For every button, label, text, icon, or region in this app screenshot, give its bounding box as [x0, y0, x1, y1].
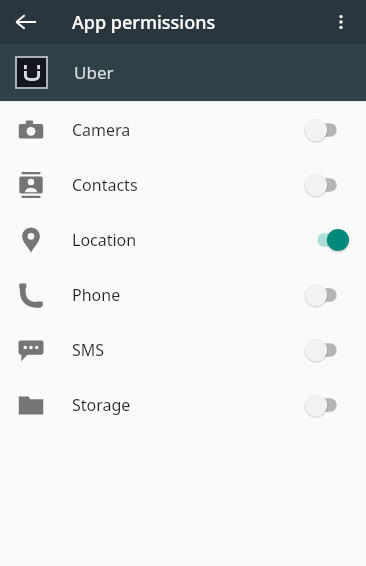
- button[interactable]: Location: [0, 212, 366, 267]
- button[interactable]: Uber: [0, 44, 366, 101]
- button[interactable]: Phone: [0, 267, 366, 322]
- staticText: App permissions: [72, 10, 216, 35]
- staticText: Uber: [74, 61, 114, 84]
- button[interactable]: Back: [6, 2, 46, 42]
- staticText: Storage: [72, 394, 305, 416]
- staticText: SMS: [72, 339, 305, 361]
- staticText: Phone: [72, 284, 305, 306]
- staticText: Camera: [72, 119, 305, 141]
- button[interactable]: Contacts: [0, 157, 366, 212]
- staticText: Contacts: [72, 174, 305, 196]
- button[interactable]: Storage: [0, 377, 366, 432]
- staticText: Location: [72, 229, 305, 251]
- button[interactable]: Camera: [0, 102, 366, 157]
- button[interactable]: More options: [321, 2, 361, 42]
- button[interactable]: SMS: [0, 322, 366, 377]
